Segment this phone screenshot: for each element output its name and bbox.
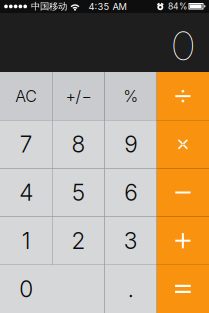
button[interactable]: Multiply [157, 120, 209, 168]
button[interactable]: 0 [0, 265, 104, 313]
button[interactable]: 3 [104, 217, 157, 265]
button[interactable]: Minus [157, 168, 209, 217]
staticText: 84% [168, 1, 187, 12]
button[interactable]: 1 [0, 217, 52, 265]
staticText: 3 [124, 227, 138, 254]
button[interactable]: 2 [52, 217, 104, 265]
button[interactable]: . [104, 265, 157, 313]
button[interactable]: 5 [52, 168, 104, 217]
staticText: 0 [19, 275, 33, 303]
button[interactable]: 7 [0, 120, 52, 168]
button[interactable]: AC [0, 72, 52, 120]
staticText: 2 [71, 227, 85, 254]
button[interactable]: 6 [104, 168, 157, 217]
staticText: 8 [71, 131, 85, 158]
staticText: 9 [124, 131, 137, 158]
button[interactable]: % [104, 72, 157, 120]
button[interactable]: +/− [52, 72, 104, 120]
button[interactable]: 8 [52, 120, 104, 168]
button[interactable]: Equals [157, 265, 209, 313]
button[interactable]: 4 [0, 168, 52, 217]
staticText: 中国移动 [31, 1, 67, 12]
staticText: AC [15, 86, 37, 106]
staticText: 1 [22, 227, 31, 254]
staticText: 6 [124, 179, 137, 206]
staticText: 5 [72, 179, 85, 206]
staticText: 7 [20, 131, 33, 158]
staticText: 4 [19, 179, 33, 206]
button[interactable]: Divide [157, 72, 209, 120]
staticText: . [128, 275, 134, 303]
staticText: 0 [172, 22, 194, 70]
staticText: % [123, 86, 138, 106]
staticText: +/− [65, 86, 91, 106]
button[interactable]: Plus [157, 217, 209, 265]
button[interactable]: 9 [104, 120, 157, 168]
staticText: 4:35 AM [88, 1, 126, 12]
